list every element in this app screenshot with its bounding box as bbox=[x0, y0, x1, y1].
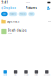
staticText: All files bbox=[2, 13, 6, 15]
button[interactable]: Offline bbox=[31, 67, 42, 79]
button[interactable]: Expenses bbox=[0, 17, 52, 26]
button[interactable]: All files bbox=[1, 12, 8, 16]
button[interactable]: Share folder bbox=[46, 5, 51, 11]
staticText: Pictures bbox=[25, 6, 36, 10]
button[interactable]: PDFs bbox=[28, 12, 35, 16]
staticText: PDFs bbox=[29, 13, 33, 15]
staticText: Expenses bbox=[7, 20, 19, 23]
staticText: 2.4 MB bbox=[8, 32, 12, 34]
staticText: Home bbox=[3, 74, 7, 76]
staticText: Folders bbox=[10, 13, 16, 15]
staticText: Dropbox bbox=[3, 6, 15, 10]
button[interactable]: Beach day.jpg bbox=[0, 26, 52, 37]
button[interactable]: Account bbox=[42, 67, 52, 79]
staticText: 9:41 bbox=[2, 1, 9, 4]
button[interactable]: Files bbox=[10, 67, 21, 79]
staticText: Files bbox=[14, 74, 17, 76]
button[interactable]: Dropbox bbox=[1, 5, 16, 11]
button[interactable]: Photos bbox=[18, 12, 27, 16]
staticText: Nova bbox=[26, 2, 30, 3]
staticText: Photos bbox=[20, 13, 26, 15]
staticText: Create bbox=[23, 74, 28, 76]
button[interactable]: Home bbox=[0, 67, 10, 79]
staticText: Beach day.jpg bbox=[8, 29, 27, 32]
button[interactable]: Create bbox=[21, 67, 31, 79]
button[interactable]: Folders bbox=[9, 12, 17, 16]
staticText: Offline bbox=[34, 74, 38, 76]
